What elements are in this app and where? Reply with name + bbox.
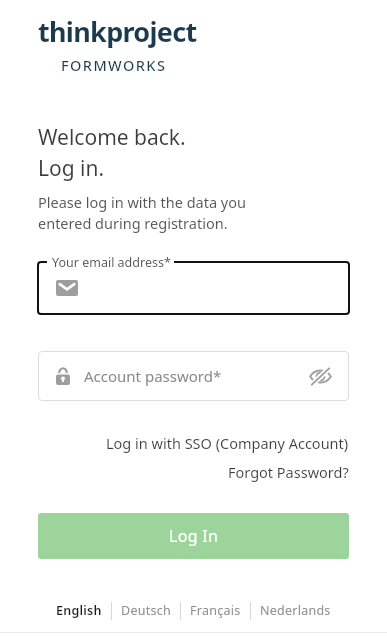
button[interactable]: Log In xyxy=(38,513,349,559)
staticText: entered during registration. xyxy=(38,213,228,233)
button[interactable]: Log in with SSO (Company Account) xyxy=(106,431,349,455)
staticText: Nederlands xyxy=(260,602,331,619)
button[interactable]: Deutsch xyxy=(121,598,171,623)
button[interactable]: Account password* xyxy=(38,351,349,401)
staticText: Welcome back. xyxy=(38,123,186,152)
staticText: FORMWORKS xyxy=(61,55,167,75)
other: thinkproject logo xyxy=(38,13,197,50)
staticText: Your email address* xyxy=(52,254,171,271)
staticText: Please log in with the data you xyxy=(38,192,246,212)
staticText: Log in. xyxy=(38,154,105,183)
button[interactable]: Nederlands xyxy=(260,598,331,623)
staticText: Deutsch xyxy=(121,602,171,619)
button[interactable]: Français xyxy=(190,598,241,623)
button[interactable]: Forgot Password? xyxy=(228,460,349,484)
staticText: Forgot Password? xyxy=(228,462,349,482)
button[interactable]: Show password xyxy=(307,363,333,389)
staticText: Français xyxy=(190,602,241,619)
button[interactable]: Your email address* xyxy=(38,253,349,315)
staticText: Log In xyxy=(169,525,219,547)
staticText: Log in with SSO (Company Account) xyxy=(106,433,349,453)
button[interactable]: English xyxy=(56,598,102,623)
staticText: English xyxy=(56,602,102,619)
staticText: Account password* xyxy=(84,366,222,386)
staticText: thinkproject xyxy=(38,13,197,50)
